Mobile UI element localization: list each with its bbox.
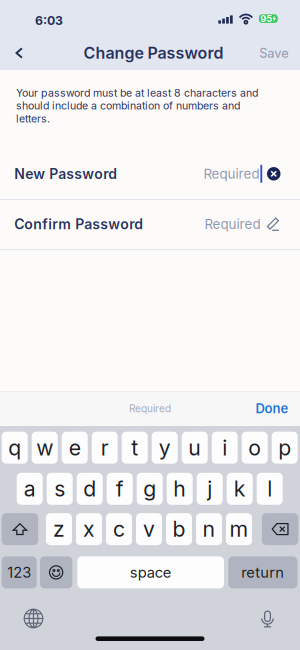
staticText: 6:03 (35, 13, 63, 28)
staticText: h (173, 476, 186, 502)
button[interactable]: f (107, 473, 133, 505)
staticText: Required (129, 402, 171, 415)
button[interactable]: Done (244, 391, 300, 426)
button[interactable]: Shift (2, 513, 38, 545)
button[interactable]: i (212, 432, 238, 464)
button[interactable]: Delete (262, 513, 298, 545)
staticText: n (202, 516, 215, 542)
button[interactable]: y (152, 432, 178, 464)
button[interactable]: t (122, 432, 148, 464)
staticText: 95 (260, 13, 272, 24)
button[interactable]: Save (252, 37, 296, 69)
button[interactable]: space (77, 556, 224, 588)
button[interactable]: l (257, 473, 283, 505)
staticText: p (278, 435, 291, 461)
staticText: t (131, 435, 138, 461)
button[interactable]: b (166, 513, 192, 545)
staticText: o (248, 435, 261, 461)
staticText: r (101, 435, 109, 461)
button[interactable]: x (76, 513, 102, 545)
staticText: y (159, 435, 171, 461)
staticText: s (54, 476, 65, 502)
button[interactable]: Dictate (254, 605, 280, 631)
staticText: u (188, 435, 201, 461)
button[interactable]: d (77, 473, 103, 505)
staticText: m (229, 516, 248, 542)
staticText: w (36, 435, 53, 461)
button[interactable]: return (228, 556, 297, 588)
button[interactable]: Back (2, 37, 36, 69)
button[interactable]: Switch keyboard (20, 605, 46, 631)
staticText: x (83, 516, 95, 542)
button[interactable]: Confirm Password (0, 199, 300, 249)
button[interactable]: n (196, 513, 222, 545)
staticText: z (53, 516, 65, 542)
staticText: k (234, 476, 246, 502)
staticText: g (143, 476, 156, 502)
button[interactable]: w (32, 432, 58, 464)
staticText: Your password must be at least 8 charact… (16, 86, 258, 125)
button[interactable]: z (46, 513, 72, 545)
button[interactable]: Emoji (40, 556, 72, 588)
button[interactable]: a (17, 473, 43, 505)
button[interactable]: j (197, 473, 223, 505)
staticText: 123 (7, 563, 31, 581)
staticText: j (207, 476, 212, 502)
staticText: Done (255, 401, 288, 416)
button[interactable]: 123 (2, 556, 37, 588)
staticText: a (24, 476, 36, 502)
button[interactable]: v (136, 513, 162, 545)
staticText: d (83, 476, 96, 502)
button[interactable]: o (242, 432, 268, 464)
staticText: c (113, 516, 125, 542)
staticText: Confirm Password (14, 216, 143, 233)
staticText: f (116, 476, 124, 502)
staticText: New Password (14, 165, 117, 182)
staticText: q (8, 435, 21, 461)
staticText: Required (204, 216, 260, 232)
button[interactable]: h (167, 473, 193, 505)
staticText: e (69, 435, 81, 461)
button[interactable]: m (226, 513, 252, 545)
staticText: Change Password (83, 43, 223, 63)
button[interactable]: u (182, 432, 208, 464)
staticText: Save (259, 45, 288, 61)
button[interactable]: k (227, 473, 253, 505)
staticText: l (267, 476, 272, 502)
staticText: Required (204, 166, 260, 182)
button[interactable]: e (62, 432, 88, 464)
staticText: i (222, 435, 227, 461)
staticText: return (241, 563, 284, 581)
staticText: space (130, 563, 172, 581)
button[interactable]: g (137, 473, 163, 505)
staticText: v (143, 516, 155, 542)
button[interactable]: q (2, 432, 28, 464)
button[interactable]: New Password (0, 149, 300, 199)
button[interactable]: p (272, 432, 298, 464)
button[interactable]: r (92, 432, 118, 464)
button[interactable]: c (106, 513, 132, 545)
button[interactable]: s (47, 473, 73, 505)
staticText: b (172, 516, 185, 542)
